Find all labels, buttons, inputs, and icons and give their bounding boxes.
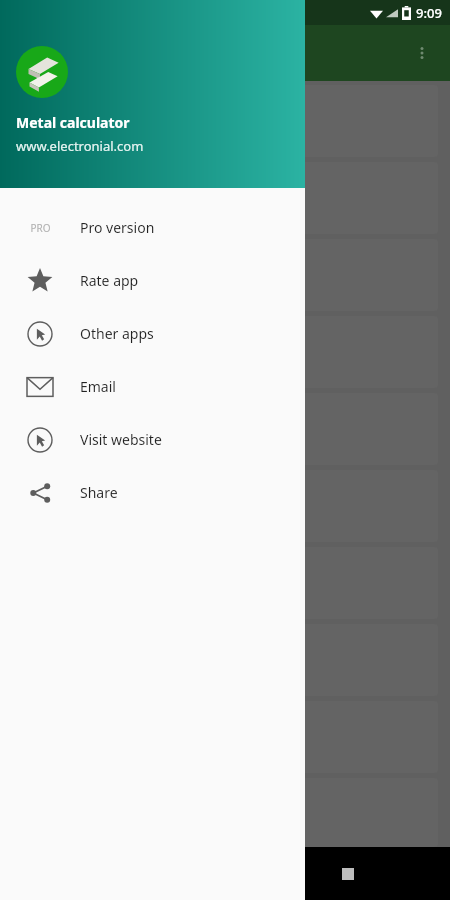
- staticText: Email: [80, 377, 116, 396]
- staticText: Rate app: [80, 271, 139, 290]
- staticText: www.electronial.com: [16, 137, 144, 155]
- staticText: Pro version: [80, 218, 155, 237]
- button[interactable]: Share: [0, 466, 305, 519]
- button[interactable]: [12, 701, 438, 773]
- button[interactable]: PRO: [0, 201, 305, 254]
- button[interactable]: [12, 393, 438, 465]
- staticText: 9:09: [416, 4, 442, 22]
- button[interactable]: [12, 85, 438, 157]
- button[interactable]: Visit website: [0, 413, 305, 466]
- staticText: Visit website: [80, 430, 162, 449]
- button[interactable]: [12, 239, 438, 311]
- button[interactable]: [12, 547, 438, 619]
- button[interactable]: [12, 162, 438, 234]
- button[interactable]: [12, 624, 438, 696]
- button[interactable]: Email: [0, 360, 305, 413]
- button[interactable]: [12, 778, 438, 847]
- button[interactable]: [12, 316, 438, 388]
- button[interactable]: Rate app: [0, 254, 305, 307]
- button[interactable]: More options: [402, 33, 442, 73]
- staticText: Other apps: [80, 324, 154, 343]
- staticText: Metal calculator: [16, 113, 130, 132]
- button[interactable]: Other apps: [0, 307, 305, 360]
- staticText: PRO: [30, 221, 51, 235]
- button[interactable]: [12, 470, 438, 542]
- staticText: Share: [80, 483, 118, 502]
- button[interactable]: Recent apps: [328, 854, 368, 894]
